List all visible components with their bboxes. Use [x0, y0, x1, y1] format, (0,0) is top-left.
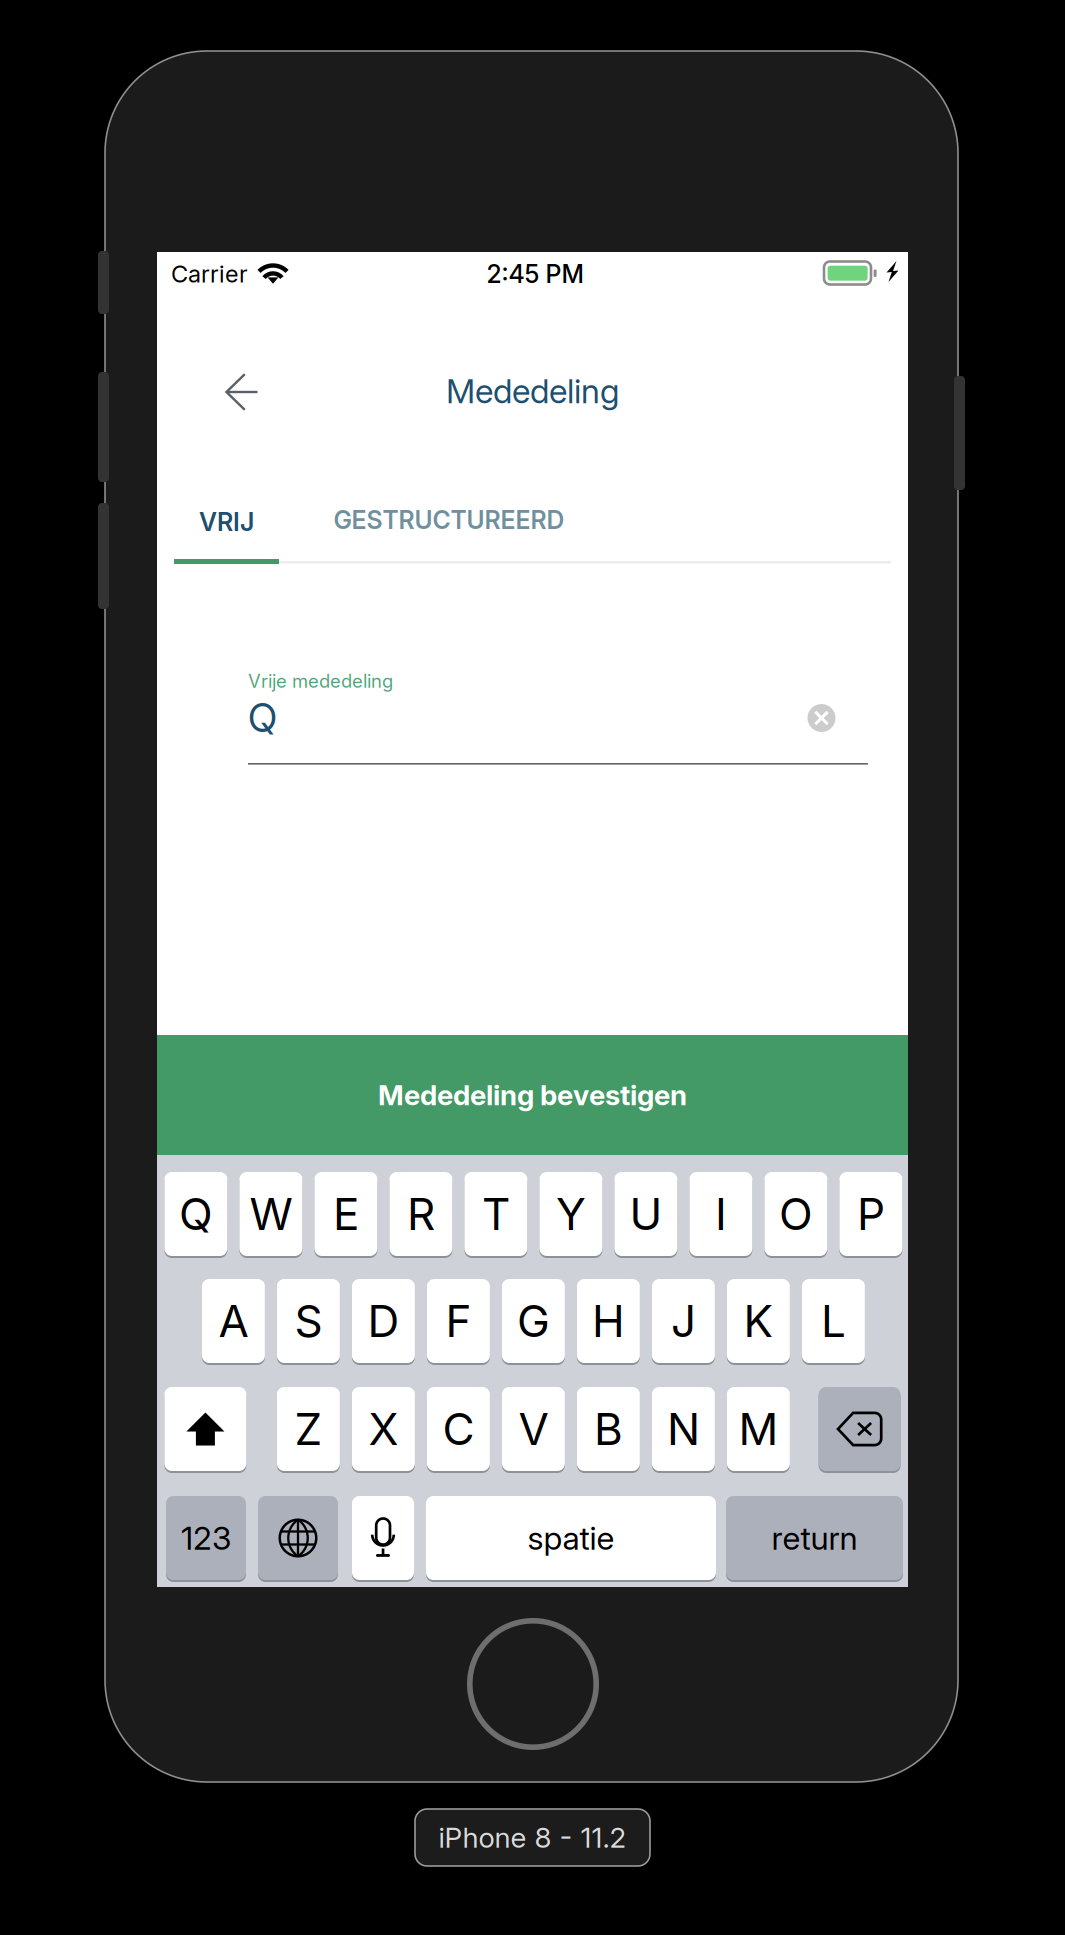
button[interactable]: return	[726, 1495, 903, 1581]
staticText: W	[249, 1187, 292, 1241]
staticText: 123	[181, 1519, 231, 1557]
button[interactable]: B	[577, 1386, 640, 1472]
staticText: O	[779, 1187, 813, 1241]
button[interactable]: Y	[539, 1171, 602, 1257]
staticText: Q	[248, 695, 277, 741]
staticText: U	[629, 1187, 662, 1241]
staticText: L	[821, 1294, 846, 1348]
button[interactable]: Mededeling bevestigen	[157, 1035, 908, 1155]
staticText: iPhone 8 - 11.2	[438, 1821, 626, 1854]
staticText: spatie	[527, 1519, 614, 1557]
button[interactable]: G	[502, 1278, 565, 1364]
button[interactable]: C	[427, 1386, 490, 1472]
staticText: X	[368, 1402, 398, 1456]
staticText: K	[743, 1294, 773, 1348]
button[interactable]: D	[352, 1278, 415, 1364]
button[interactable]: L	[802, 1278, 865, 1364]
button[interactable]: P	[839, 1171, 902, 1257]
staticText: P	[857, 1187, 885, 1241]
button[interactable]: N	[652, 1386, 715, 1472]
button[interactable]: Back	[194, 350, 290, 434]
staticText: G	[517, 1294, 550, 1348]
button[interactable]	[258, 1495, 338, 1581]
button[interactable]: O	[764, 1171, 827, 1257]
button[interactable]: A	[202, 1278, 265, 1364]
staticText: GESTRUCTUREERD	[333, 505, 564, 535]
staticText: H	[592, 1294, 625, 1348]
staticText: 2:45 PM	[486, 259, 583, 289]
button[interactable]: J	[652, 1278, 715, 1364]
button[interactable]	[352, 1495, 414, 1581]
staticText: Vrije mededeling	[248, 670, 393, 692]
button[interactable]: F	[427, 1278, 490, 1364]
button[interactable]: R	[389, 1171, 452, 1257]
staticText: C	[442, 1402, 474, 1456]
staticText: Y	[556, 1187, 586, 1241]
staticText: T	[482, 1187, 510, 1241]
button[interactable]: E	[314, 1171, 377, 1257]
button[interactable]: Clear text	[805, 702, 837, 734]
staticText: V	[518, 1402, 548, 1456]
staticText: Z	[294, 1402, 322, 1456]
button[interactable]: X	[352, 1386, 415, 1472]
staticText: Mededeling	[446, 371, 619, 411]
staticText: A	[218, 1294, 248, 1348]
button[interactable]: K	[727, 1278, 790, 1364]
button[interactable]	[819, 1386, 901, 1472]
button[interactable]: T	[464, 1171, 527, 1257]
staticText: F	[445, 1294, 471, 1348]
button[interactable]: Z	[277, 1386, 340, 1472]
staticText: E	[333, 1187, 359, 1241]
staticText: return	[771, 1519, 857, 1557]
staticText: B	[594, 1402, 623, 1456]
button[interactable]: M	[727, 1386, 790, 1472]
button[interactable]: 123	[166, 1495, 246, 1581]
staticText: M	[738, 1402, 778, 1456]
button[interactable]: GESTRUCTUREERD	[329, 500, 569, 540]
staticText: I	[715, 1187, 727, 1241]
staticText: Carrier	[171, 260, 248, 288]
button[interactable]: VRIJ	[174, 502, 279, 542]
button[interactable]: Q	[164, 1171, 227, 1257]
button[interactable]: W	[239, 1171, 302, 1257]
button[interactable]: H	[577, 1278, 640, 1364]
button[interactable]	[164, 1386, 246, 1472]
staticText: R	[407, 1187, 435, 1241]
staticText: J	[671, 1294, 696, 1348]
staticText: Q	[179, 1187, 213, 1241]
button[interactable]: V	[502, 1386, 565, 1472]
button[interactable]: spatie	[426, 1495, 716, 1581]
staticText: D	[367, 1294, 399, 1348]
button[interactable]: U	[614, 1171, 677, 1257]
staticText: S	[294, 1294, 322, 1348]
staticText: VRIJ	[199, 507, 254, 537]
staticText: N	[667, 1402, 700, 1456]
button[interactable]: S	[277, 1278, 340, 1364]
staticText: Mededeling bevestigen	[378, 1078, 687, 1112]
button[interactable]: I	[689, 1171, 752, 1257]
